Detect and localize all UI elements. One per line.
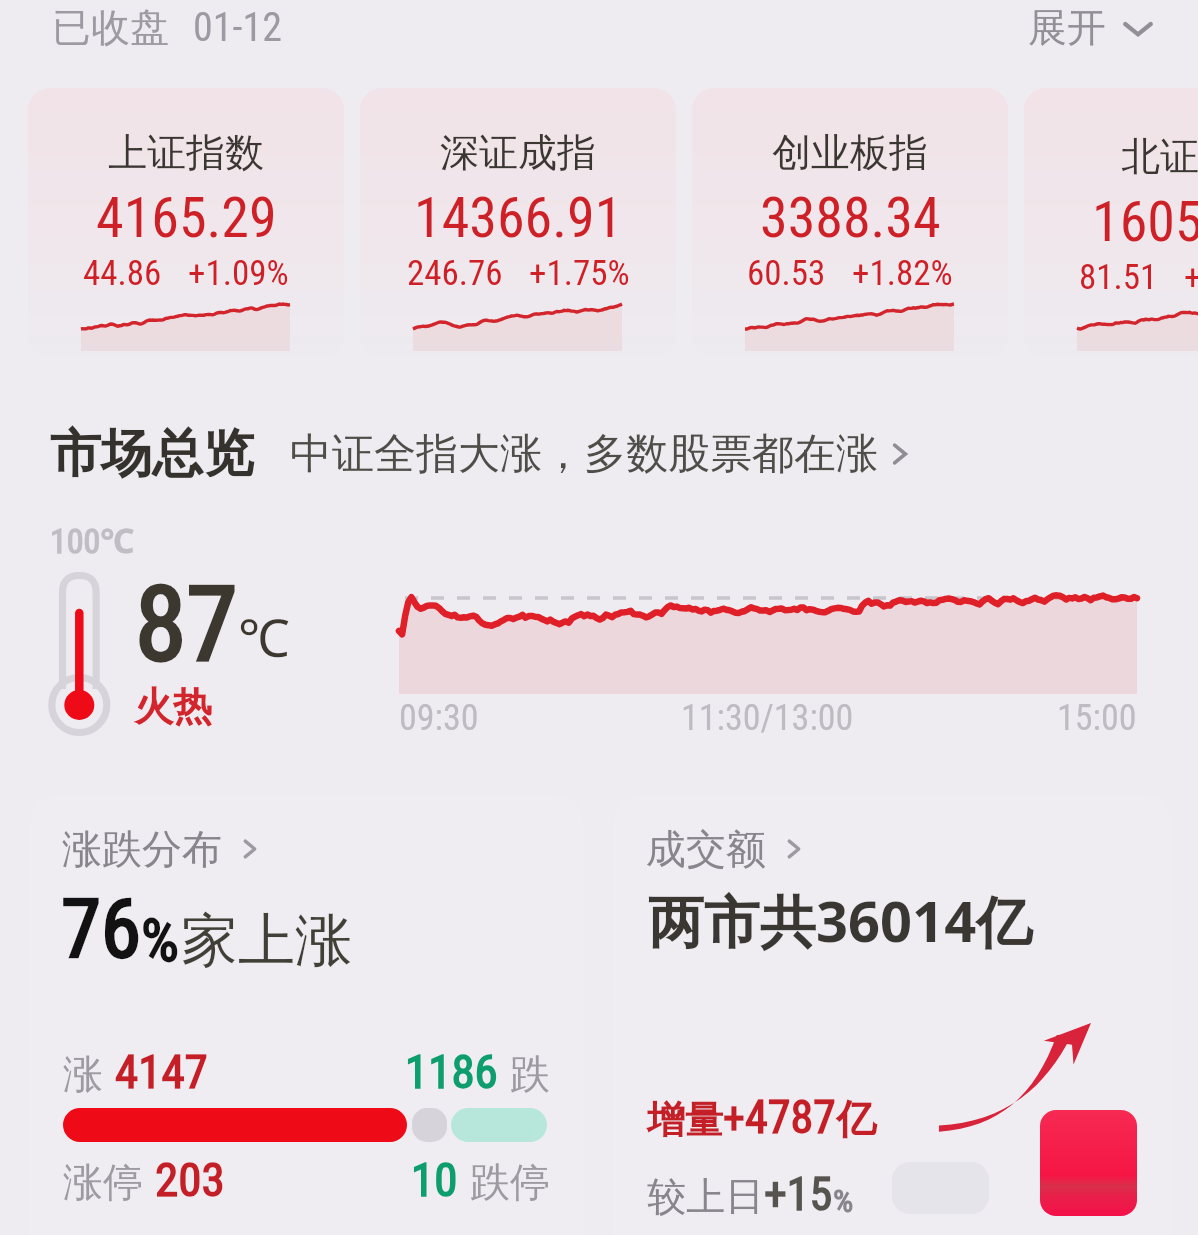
staticText: 涨	[63, 1049, 103, 1099]
staticText: 81.51	[1079, 257, 1158, 298]
staticText: 4147	[115, 1044, 208, 1099]
staticText: 10	[411, 1152, 458, 1207]
button[interactable]: 深证成指	[360, 88, 676, 358]
button[interactable]: 展开	[1028, 3, 1158, 52]
staticText: 火热	[134, 682, 212, 731]
staticText: 100℃	[50, 517, 135, 563]
staticText: 增量	[647, 1096, 723, 1144]
staticText: 44.86	[83, 253, 162, 294]
staticText: 09:30	[399, 697, 479, 739]
button[interactable]: 上证指数	[28, 88, 344, 358]
staticText: 246.76	[407, 253, 503, 294]
staticText: 中证全指大涨，多数股票都在涨	[290, 428, 878, 481]
staticText: 跌	[510, 1049, 550, 1099]
staticText: +5.35%	[1184, 257, 1198, 298]
staticText: 76	[61, 882, 141, 977]
staticText: 北证50	[1121, 128, 1198, 181]
staticText: 14366.91	[414, 185, 623, 251]
staticText: +1.09%	[188, 253, 289, 294]
staticText: 跌停	[470, 1157, 550, 1207]
staticText: +1.82%	[852, 253, 953, 294]
button[interactable]: 已收盘	[52, 3, 282, 52]
button[interactable]: 成交额	[646, 824, 808, 874]
staticText: 60.53	[747, 253, 826, 294]
staticText: ℃	[238, 601, 290, 672]
staticText: 15:00	[1057, 697, 1137, 739]
staticText: 创业板指	[772, 128, 928, 177]
staticText: 涨停	[63, 1157, 143, 1207]
staticText: 市场总览	[50, 422, 254, 486]
button[interactable]: 涨跌分布	[30, 794, 583, 1235]
staticText: 1605.37	[1092, 189, 1198, 255]
staticText: 4787	[745, 1090, 836, 1144]
button[interactable]: Shortcut	[1040, 1110, 1137, 1216]
staticText: 4165.29	[96, 185, 277, 251]
staticText: 两市共36014亿	[648, 882, 1033, 958]
button[interactable]: 创业板指	[692, 88, 1008, 358]
staticText: 家上涨	[181, 905, 352, 977]
staticText: 87	[135, 564, 238, 686]
staticText: 亿	[836, 1094, 876, 1144]
staticText: 上证指数	[108, 128, 264, 177]
staticText: 11:30/13:00	[681, 697, 854, 739]
staticText: 3388.34	[760, 185, 941, 251]
staticText: 已收盘	[52, 3, 169, 52]
staticText: +1.75%	[529, 253, 630, 294]
staticText: %	[141, 905, 179, 975]
button[interactable]: 市场总览	[50, 422, 916, 486]
staticText: 203	[155, 1152, 225, 1207]
staticText: 涨跌分布	[62, 824, 222, 874]
staticText: 深证成指	[440, 128, 596, 177]
staticText: +	[723, 1092, 745, 1144]
staticText: 01-12	[193, 4, 282, 51]
staticText: 较上日	[647, 1172, 764, 1221]
staticText: 展开	[1028, 3, 1106, 52]
staticText: %	[833, 1182, 854, 1220]
button[interactable]: 成交额	[614, 794, 1172, 1235]
staticText: +15	[764, 1167, 833, 1221]
button[interactable]: 涨跌分布	[62, 824, 264, 874]
staticText: 成交额	[646, 824, 766, 874]
staticText: 1186	[405, 1044, 498, 1099]
button[interactable]: 北证50	[1024, 88, 1198, 358]
